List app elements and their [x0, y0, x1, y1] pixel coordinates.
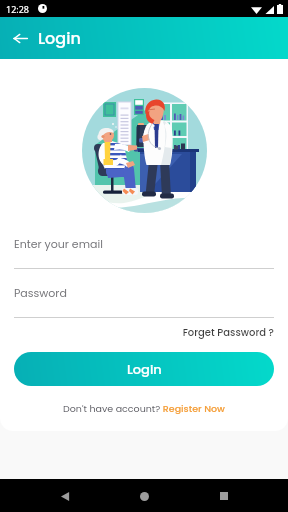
staticText: 12:28: [6, 3, 30, 15]
button[interactable]: Back: [50, 481, 80, 511]
staticText: Forget Password ?: [0, 325, 274, 339]
staticText: Password: [14, 285, 67, 300]
button[interactable]: Password: [14, 285, 274, 318]
button[interactable]: Recents: [209, 481, 239, 511]
staticText: Enter your email: [14, 236, 103, 251]
button[interactable]: Back: [9, 27, 31, 49]
button[interactable]: Login: [14, 352, 274, 386]
button[interactable]: Enter your email: [14, 236, 274, 269]
button[interactable]: Don't have account? Register Now: [63, 402, 225, 415]
button[interactable]: Home: [129, 481, 159, 511]
staticText: Login: [127, 360, 162, 378]
staticText: Login: [38, 27, 81, 49]
